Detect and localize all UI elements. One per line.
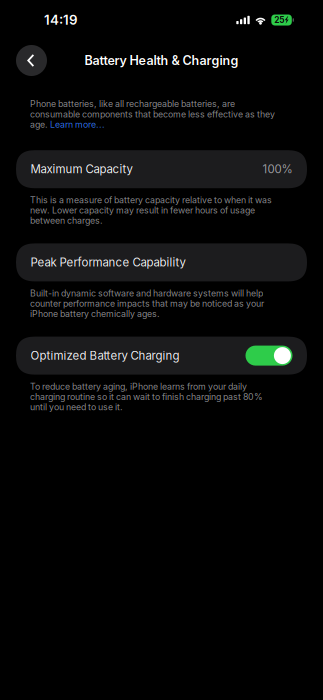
staticText: Peak Performance Capability <box>30 255 185 269</box>
staticText: 25 <box>274 15 284 25</box>
staticText: Learn more... <box>50 121 105 128</box>
button[interactable]: Peak Performance Capability <box>16 243 307 281</box>
button[interactable]: Back <box>16 45 47 76</box>
staticText: Optimized Battery Charging <box>30 349 179 363</box>
staticText: Phone batteries, like all rechargeable b… <box>30 100 235 108</box>
staticText: consumable components that become less e… <box>30 110 275 118</box>
staticText: Battery Health & Charging <box>84 53 238 68</box>
staticText: Maximum Capacity <box>30 162 132 176</box>
staticText: This is a measure of battery capacity re… <box>30 196 272 224</box>
button[interactable]: Learn more... <box>50 121 105 128</box>
staticText: Built-in dynamic software and hardware s… <box>30 289 264 318</box>
staticText: age. <box>30 121 50 128</box>
staticText: 14:19 <box>44 12 78 28</box>
button[interactable]: Maximum Capacity <box>16 150 307 188</box>
staticText: To reduce battery aging, iPhone learns f… <box>30 383 263 411</box>
button[interactable]: Optimized Battery Charging <box>16 337 307 375</box>
staticText: 100% <box>262 162 292 176</box>
